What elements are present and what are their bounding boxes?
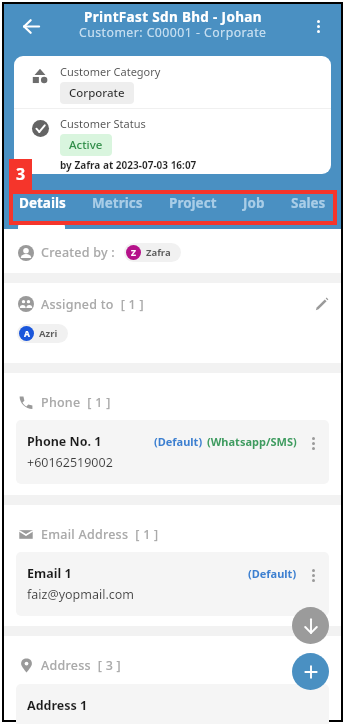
button[interactable]: More options [303,11,333,41]
button[interactable]: Metrics [79,182,156,229]
staticText: 3 [16,163,26,185]
button[interactable]: Job [230,182,278,229]
staticText: Email 1 [27,565,72,582]
staticText: +60162519002 [27,454,113,471]
staticText: Email Address [ 1 ] [41,526,159,543]
staticText: Project [169,194,217,212]
staticText: Metrics [92,194,143,212]
staticText: Details [19,194,66,212]
staticText: (Default) [154,434,203,449]
button[interactable]: Email 1 [16,552,329,616]
staticText: Customer Status [60,116,146,131]
button[interactable]: Details [6,182,79,229]
staticText: Zafra [146,246,171,259]
button[interactable]: Project [156,182,230,229]
staticText: by Zafra at 2023-07-03 16:07 [60,158,197,172]
staticText: Corporate [69,85,125,101]
staticText: A [24,328,30,340]
button[interactable]: Options [303,565,323,585]
staticText: Created by : [41,244,116,261]
staticText: Active [69,137,103,153]
button[interactable]: Back [14,9,48,43]
staticText: Address 1 [27,697,88,714]
staticText: (Default) [248,566,297,581]
staticText: Customer Category [60,64,161,79]
staticText: faiz@yopmail.com [27,586,135,603]
button[interactable]: Edit [310,293,332,315]
staticText: Z [131,247,136,259]
button[interactable]: Phone No. 1 [16,420,329,484]
staticText: Address [ 3 ] [41,657,121,674]
button[interactable]: Add [292,653,329,690]
button[interactable]: Options [303,433,323,453]
staticText: PrintFast Sdn Bhd - Johan [84,8,262,26]
staticText: Assigned to [ 1 ] [41,296,144,313]
button[interactable]: Sales [278,182,339,229]
button[interactable]: Z [124,243,181,262]
staticText: Azri [39,327,58,340]
button[interactable]: Address 1 [16,684,329,724]
staticText: (Whatsapp/SMS) [207,434,297,449]
button[interactable]: Scroll down [292,607,329,644]
staticText: Sales [291,194,326,212]
staticText: Customer: C00001 - Corporate [79,24,267,41]
button[interactable]: A [17,324,68,343]
staticText: Job [243,194,265,212]
staticText: Phone No. 1 [27,433,102,450]
staticText: Phone [ 1 ] [41,394,111,411]
